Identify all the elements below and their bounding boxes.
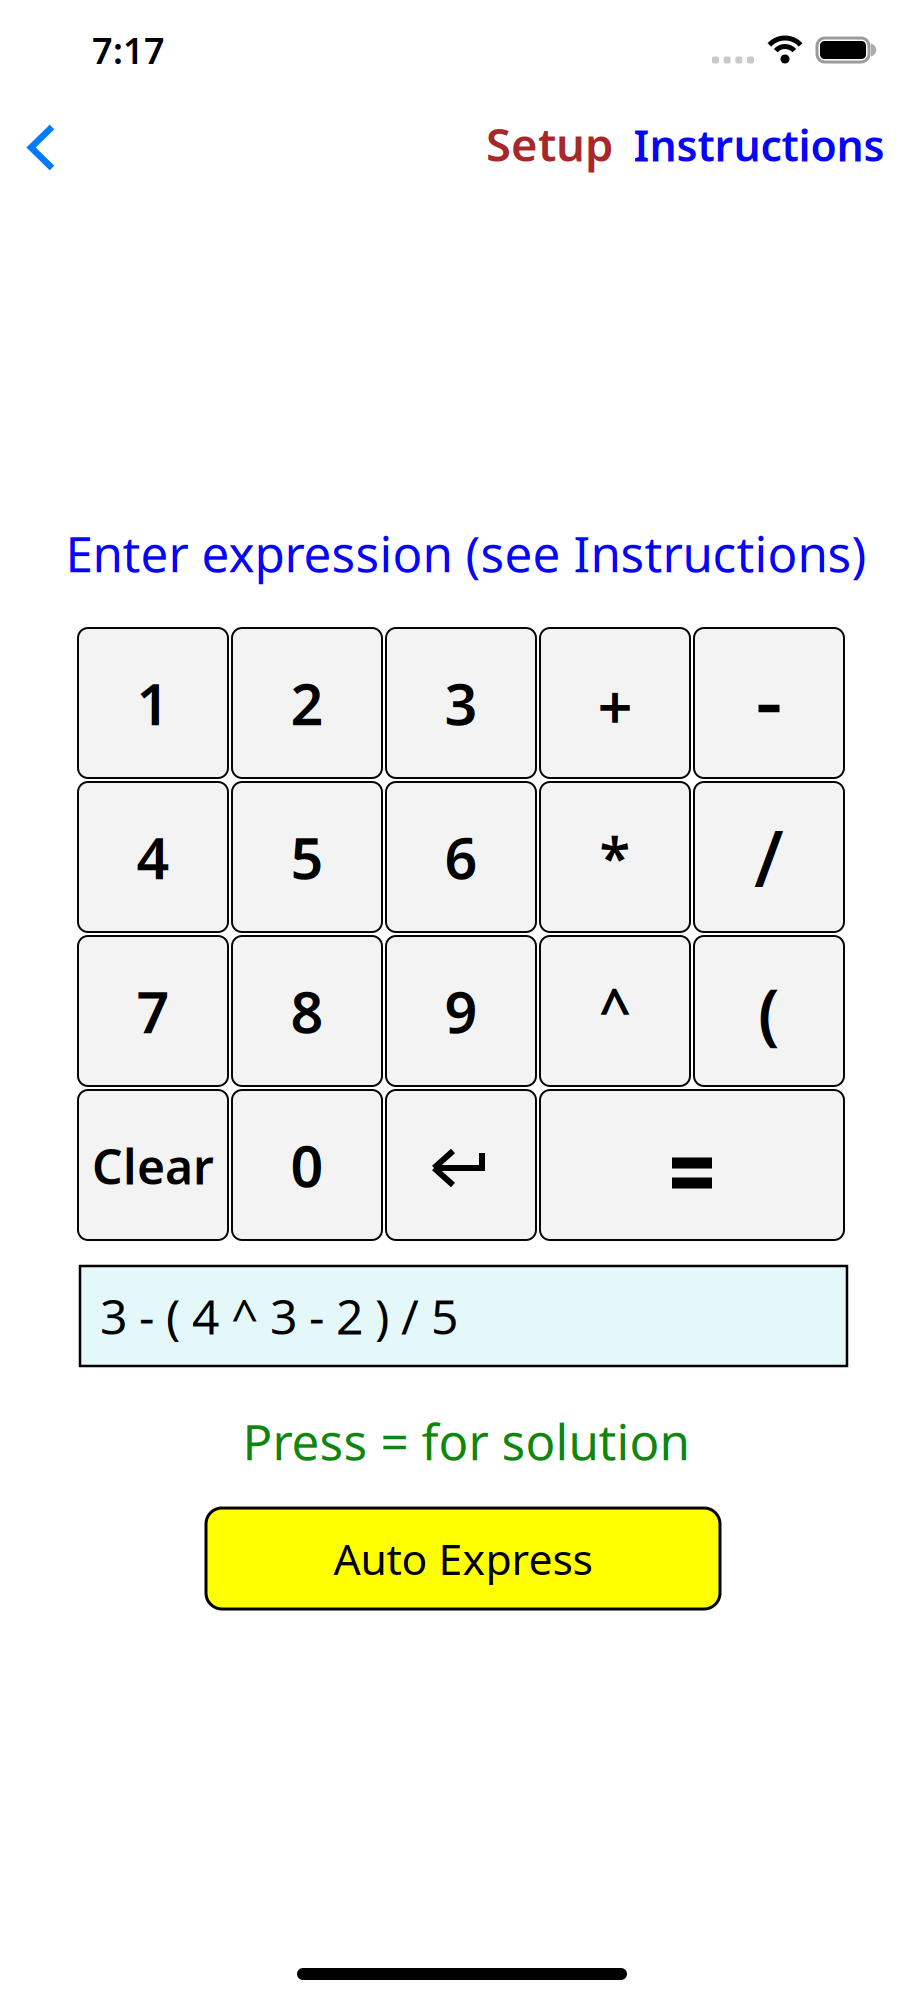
staticText: Enter expression (see Instructions) <box>65 520 866 586</box>
button[interactable]: Minus <box>694 628 844 778</box>
button[interactable]: * <box>540 782 690 932</box>
button[interactable]: 1 <box>78 628 228 778</box>
button[interactable]: + <box>540 628 690 778</box>
staticText: / <box>754 806 784 908</box>
staticText: Clear <box>92 1134 214 1198</box>
button[interactable]: ( <box>694 936 844 1086</box>
staticText: 7 <box>136 973 169 1049</box>
button[interactable]: 9 <box>386 936 536 1086</box>
staticText: Instructions <box>633 117 884 173</box>
staticText: Press = for solution <box>242 1408 689 1474</box>
staticText: 4 <box>136 819 169 895</box>
staticText: + <box>597 665 632 747</box>
button[interactable]: 4 <box>78 782 228 932</box>
staticText: * <box>599 819 630 893</box>
staticText: Auto Express <box>333 1530 592 1587</box>
staticText: 2 <box>290 665 323 741</box>
button[interactable]: 6 <box>386 782 536 932</box>
staticText: 3 - ( 4 ^ 3 - 2 ) / 5 <box>100 1284 458 1348</box>
button[interactable]: Auto Express <box>206 1508 720 1609</box>
staticText: 8 <box>290 973 323 1049</box>
button[interactable]: 0 <box>232 1090 382 1240</box>
button[interactable]: 8 <box>232 936 382 1086</box>
staticText: 6 <box>444 819 477 895</box>
button[interactable]: Equals <box>540 1090 844 1240</box>
button[interactable]: 3 <box>386 628 536 778</box>
staticText: Setup <box>486 114 613 174</box>
button[interactable]: Clear <box>78 1090 228 1240</box>
button[interactable]: Return <box>386 1090 536 1240</box>
staticText: 3 <box>444 665 477 741</box>
button[interactable]: 7 <box>78 936 228 1086</box>
staticText: ^ <box>599 971 631 1045</box>
staticText: 9 <box>444 973 477 1049</box>
staticText: 1 <box>136 665 169 741</box>
button[interactable]: 2 <box>232 628 382 778</box>
staticText: 0 <box>290 1127 323 1203</box>
button[interactable]: 5 <box>232 782 382 932</box>
button[interactable]: Setup <box>486 114 613 174</box>
staticText: ( <box>758 968 780 1056</box>
staticText: 5 <box>290 819 323 895</box>
staticText: 7:17 <box>92 26 165 74</box>
button[interactable]: Instructions <box>633 117 884 173</box>
button[interactable]: / <box>694 782 844 932</box>
button[interactable]: Back <box>27 123 57 172</box>
button[interactable]: ^ <box>540 936 690 1086</box>
